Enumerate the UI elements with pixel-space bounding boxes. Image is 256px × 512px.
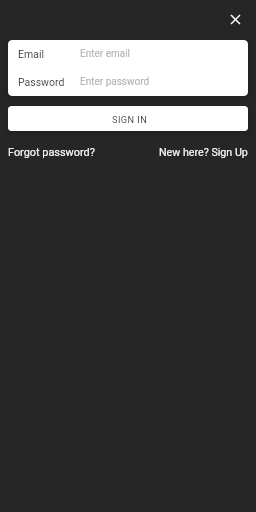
staticText: New here? Sign Up xyxy=(159,146,248,159)
button[interactable]: Password xyxy=(8,68,248,96)
button[interactable]: Forgot password? xyxy=(8,146,95,159)
button[interactable]: Close xyxy=(225,9,245,29)
staticText: Email xyxy=(18,48,44,60)
staticText: Password xyxy=(18,76,65,88)
button[interactable]: SIGN IN xyxy=(8,106,248,131)
staticText: SIGN IN xyxy=(112,114,148,125)
button[interactable]: New here? Sign Up xyxy=(159,146,248,159)
button[interactable]: Email xyxy=(8,40,248,68)
staticText: Enter password xyxy=(80,76,150,88)
staticText: Enter email xyxy=(80,48,131,60)
staticText: Forgot password? xyxy=(8,146,95,159)
